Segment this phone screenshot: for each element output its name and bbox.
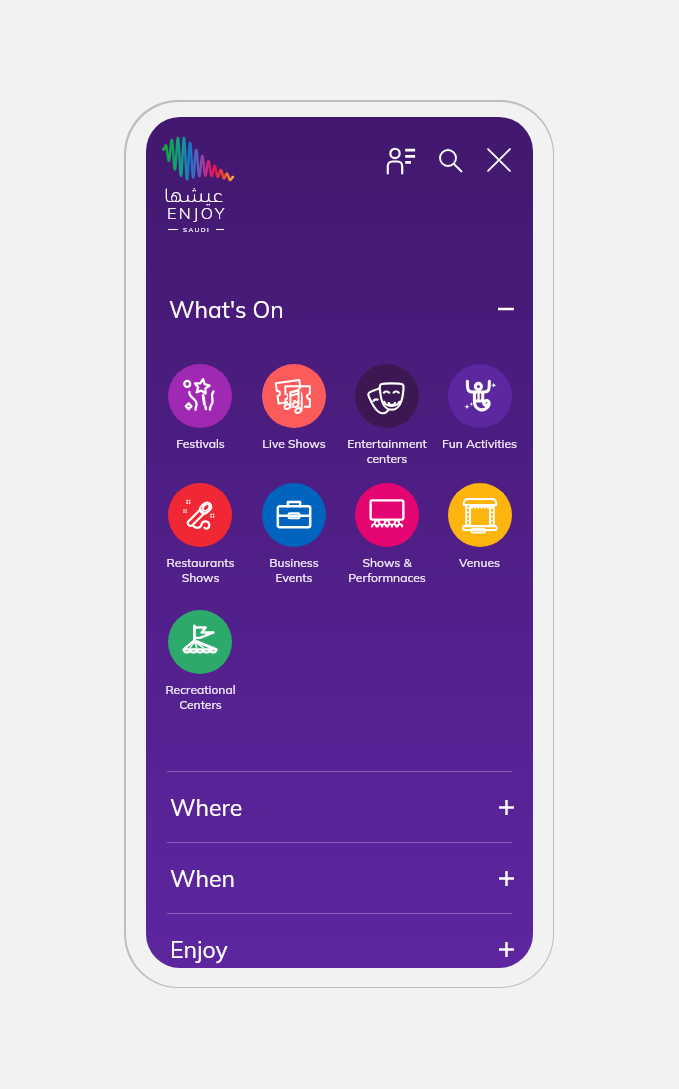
button[interactable]: Live Shows [247,364,340,451]
button[interactable]: Fun Activities [433,364,526,451]
button[interactable]: Restaurants Shows [153,483,247,585]
staticText: عيشها [164,188,224,209]
staticText: SAUDI [183,225,211,233]
staticText: When [170,864,236,893]
button[interactable]: Search [430,140,470,180]
staticText: Fun Activities [442,436,517,451]
staticText: Entertainment centers [347,436,427,466]
button[interactable]: Contacts [381,140,421,180]
button[interactable]: Where [146,772,533,842]
button[interactable]: Enjoy [146,914,533,968]
staticText: Recreational Centers [165,682,236,712]
staticText: Live Shows [262,436,326,451]
button[interactable]: What's On [146,285,533,333]
staticText: Enjoy [170,935,228,964]
staticText: Shows & Performnaces [348,555,426,585]
button[interactable]: Venues [433,483,526,570]
button[interactable]: Shows & Performnaces [340,483,433,585]
button[interactable]: Close [479,140,519,180]
button[interactable]: Festivals [153,364,247,451]
staticText: Venues [459,555,500,570]
staticText: Business Events [269,555,319,585]
staticText: What's On [169,295,284,324]
button[interactable]: Business Events [247,483,340,585]
button[interactable]: Recreational Centers [153,610,247,712]
button[interactable]: Entertainment centers [340,364,433,466]
staticText: Festivals [176,436,225,451]
staticText: Restaurants Shows [166,555,235,585]
button[interactable]: When [146,843,533,913]
staticText: Where [170,793,243,822]
staticText: ENJOY [167,203,227,223]
